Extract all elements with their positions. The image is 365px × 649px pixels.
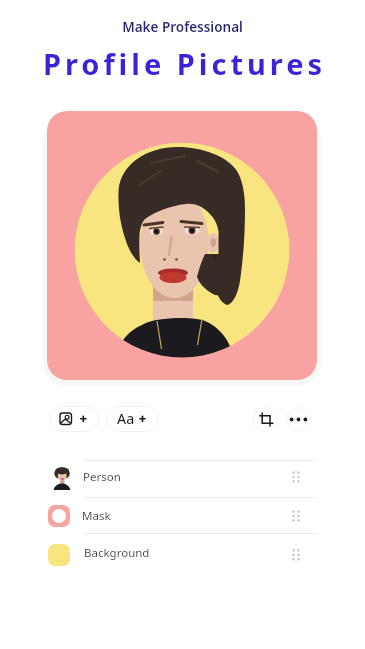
button[interactable] [286,407,311,432]
staticText: Make Professional [0,18,365,36]
staticText: Person [83,469,121,485]
staticText: Aa [117,409,135,428]
button[interactable] [253,407,278,432]
staticText: Background [84,545,150,561]
button[interactable]: Person [0,460,365,497]
staticText: Mask [82,508,111,524]
button[interactable] [47,111,317,380]
button[interactable]: Aa [106,406,159,432]
button[interactable]: Mask [0,497,365,533]
button[interactable]: Background [0,533,365,570]
staticText: Profile Pictures [2,44,365,83]
button[interactable] [49,406,99,432]
